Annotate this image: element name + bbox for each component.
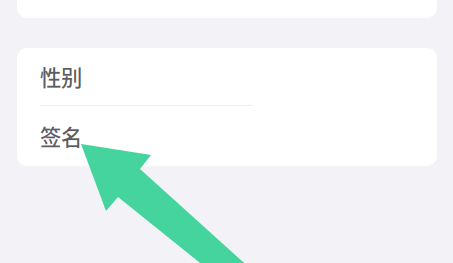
- staticText: 签名: [40, 121, 82, 151]
- button[interactable]: 签名: [17, 106, 437, 166]
- button[interactable]: 性别: [17, 48, 437, 105]
- staticText: 性别: [40, 61, 82, 92]
